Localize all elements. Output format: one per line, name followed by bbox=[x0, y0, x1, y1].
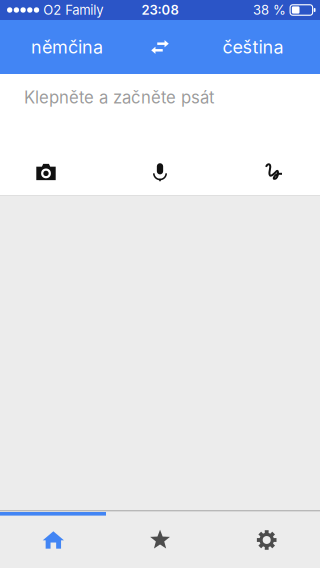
button[interactable]: Swap languages bbox=[138, 25, 182, 69]
button[interactable]: Handwriting bbox=[264, 149, 284, 195]
staticText: 38 % bbox=[253, 2, 286, 18]
staticText: čeština bbox=[222, 36, 283, 58]
button[interactable]: Voice input bbox=[150, 149, 170, 195]
staticText: Klepněte a začněte psát bbox=[24, 87, 214, 108]
button[interactable]: Camera bbox=[36, 149, 56, 195]
button[interactable]: němčina bbox=[8, 20, 126, 74]
button[interactable]: Home bbox=[0, 516, 107, 564]
staticText: němčina bbox=[31, 36, 103, 58]
button[interactable]: Klepněte a začněte psát bbox=[0, 74, 320, 121]
button[interactable]: Settings bbox=[213, 516, 320, 564]
staticText: O2 Family bbox=[43, 2, 103, 18]
button[interactable]: Phrasebook bbox=[107, 516, 213, 564]
button[interactable]: čeština bbox=[194, 20, 312, 74]
staticText: 23:08 bbox=[141, 2, 178, 18]
